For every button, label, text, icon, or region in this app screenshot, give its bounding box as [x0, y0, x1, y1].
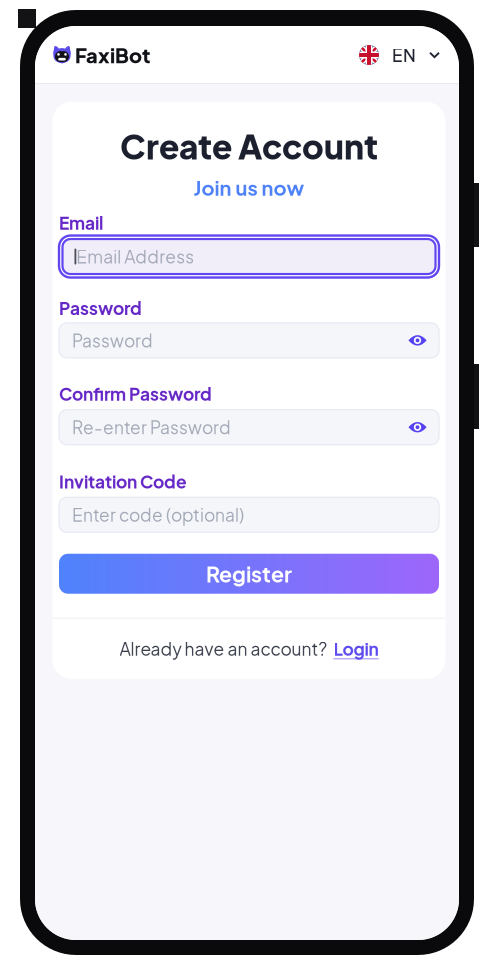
staticText: Confirm Password	[59, 383, 212, 405]
staticText: Join us now	[193, 175, 304, 200]
staticText: Email	[59, 212, 103, 233]
button[interactable]: Enter code (optional)	[59, 497, 439, 532]
staticText: Register	[206, 560, 292, 587]
staticText: Email Address	[76, 246, 194, 267]
staticText: Create Account	[120, 125, 378, 167]
staticText: Password	[59, 297, 142, 319]
button[interactable]: FaxiBot	[52, 42, 150, 68]
button[interactable]: EN	[359, 44, 440, 66]
staticText: FaxiBot	[75, 42, 150, 68]
button[interactable]: Password	[59, 323, 439, 358]
staticText: Password	[72, 329, 153, 351]
button[interactable]: Already have an account?	[52, 619, 445, 679]
staticText: EN	[392, 44, 416, 66]
button[interactable]: Re-enter Password	[59, 410, 439, 445]
button[interactable]: Register	[59, 554, 439, 594]
staticText: Invitation Code	[59, 470, 187, 492]
staticText: Login	[333, 638, 378, 660]
staticText: Enter code (optional)	[72, 504, 244, 526]
button[interactable]: Email Address	[59, 235, 439, 277]
staticText: Re-enter Password	[72, 416, 231, 438]
staticText: Already have an account?	[119, 638, 327, 660]
